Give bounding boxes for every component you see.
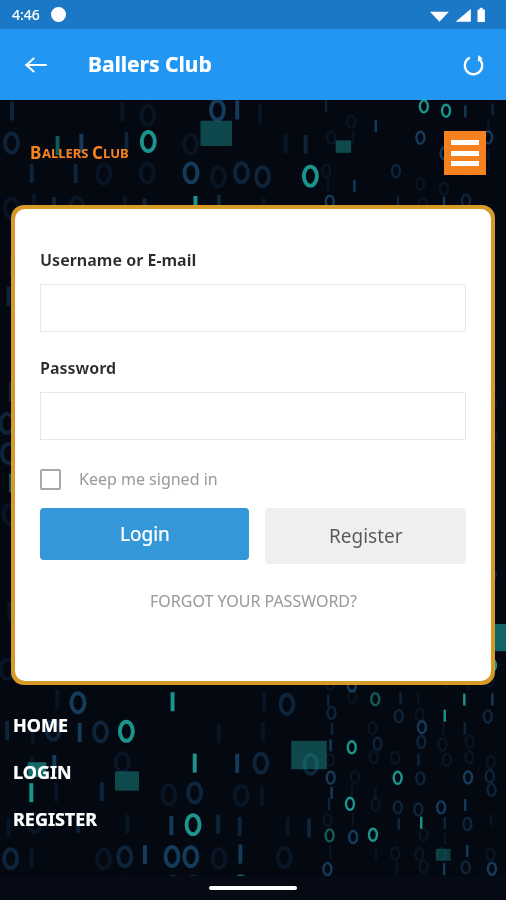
staticText: Register (329, 523, 403, 549)
button[interactable]: Back (14, 43, 58, 87)
button[interactable]: REGISTER (13, 807, 98, 832)
button[interactable]: Register (265, 508, 466, 564)
staticText: Username or E-mail (40, 249, 197, 271)
button[interactable]: FORGOT YOUR PASSWORD? (150, 590, 357, 612)
button[interactable] (40, 392, 466, 440)
staticText: Password (40, 357, 117, 379)
button[interactable]: Menu (444, 131, 486, 175)
staticText: C (92, 141, 103, 164)
staticText: Login (120, 521, 170, 547)
button[interactable] (40, 284, 466, 332)
staticText: Keep me signed in (79, 468, 218, 490)
staticText: LUB (103, 144, 129, 162)
button[interactable]: Refresh (452, 44, 494, 86)
button[interactable]: HOME (13, 713, 69, 738)
staticText: B (30, 141, 42, 164)
button[interactable]: Login (40, 508, 249, 560)
button[interactable]: LOGIN (13, 760, 72, 785)
staticText: Ballers Club (88, 50, 212, 79)
button[interactable]: B (30, 141, 129, 164)
staticText: LOGIN (13, 760, 72, 785)
staticText: 4:46 (12, 5, 40, 24)
staticText: ALLERS (42, 144, 92, 162)
button[interactable]: Keep me signed in (40, 468, 218, 490)
staticText: REGISTER (13, 807, 98, 832)
staticText: HOME (13, 713, 69, 738)
